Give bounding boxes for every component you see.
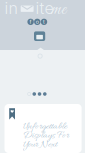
button[interactable]: f [27,19,34,25]
staticText: in [4,0,17,18]
staticText: t [43,19,45,25]
staticText: Your Next [23,138,57,151]
button[interactable]: New invitation [34,31,45,41]
staticText: me [51,0,66,21]
staticText: Displays For [23,129,69,142]
staticText: Unforgettable [23,120,67,133]
staticText: ite [35,0,53,18]
button[interactable]: o [34,19,40,25]
staticText: o [36,19,39,25]
button[interactable]: t [41,19,47,25]
staticText: f [30,19,32,25]
